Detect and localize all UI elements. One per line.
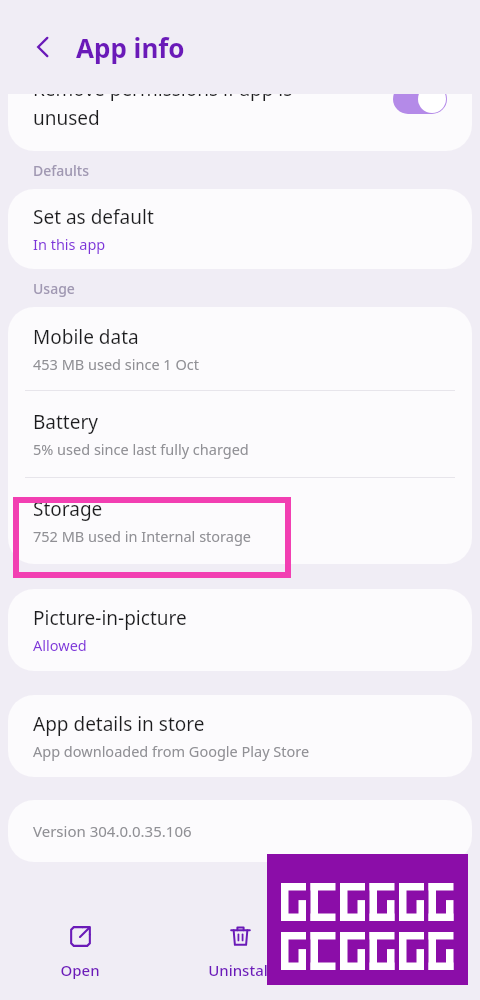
staticText: Defaults: [33, 161, 89, 180]
staticText: Picture-in-picture: [33, 605, 187, 631]
button[interactable]: Battery: [8, 391, 472, 477]
staticText: Usage: [33, 279, 75, 298]
staticText: 5% used since last fully charged: [33, 439, 249, 459]
staticText: Open: [60, 960, 100, 980]
staticText: Battery: [33, 409, 98, 435]
button[interactable]: Set as default: [8, 189, 472, 269]
staticText: Uninstall: [208, 960, 272, 980]
staticText: App info: [76, 30, 185, 65]
button[interactable]: Storage: [8, 478, 472, 564]
button[interactable]: Back: [26, 30, 60, 64]
staticText: Storage: [33, 496, 103, 522]
staticText: App downloaded from Google Play Store: [33, 741, 310, 761]
staticText: Allowed: [33, 635, 87, 655]
staticText: Remove permissions if app is: [33, 94, 293, 102]
staticText: Version 304.0.0.35.106: [33, 821, 192, 841]
button[interactable]: Uninstall: [160, 902, 320, 1000]
staticText: App details in store: [33, 711, 205, 737]
button[interactable]: Open: [0, 902, 160, 1000]
staticText: Mobile data: [33, 324, 139, 350]
button[interactable]: Mobile data: [8, 307, 472, 390]
staticText: 752 MB used in Internal storage: [33, 526, 252, 546]
button[interactable]: Remove permissions if app is: [8, 94, 472, 151]
staticText: 453 MB used since 1 Oct: [33, 354, 199, 374]
staticText: unused: [33, 105, 100, 131]
button[interactable]: Picture-in-picture: [8, 589, 472, 671]
staticText: Set as default: [33, 204, 154, 230]
button[interactable]: App details in store: [8, 695, 472, 777]
staticText: In this app: [33, 234, 106, 254]
